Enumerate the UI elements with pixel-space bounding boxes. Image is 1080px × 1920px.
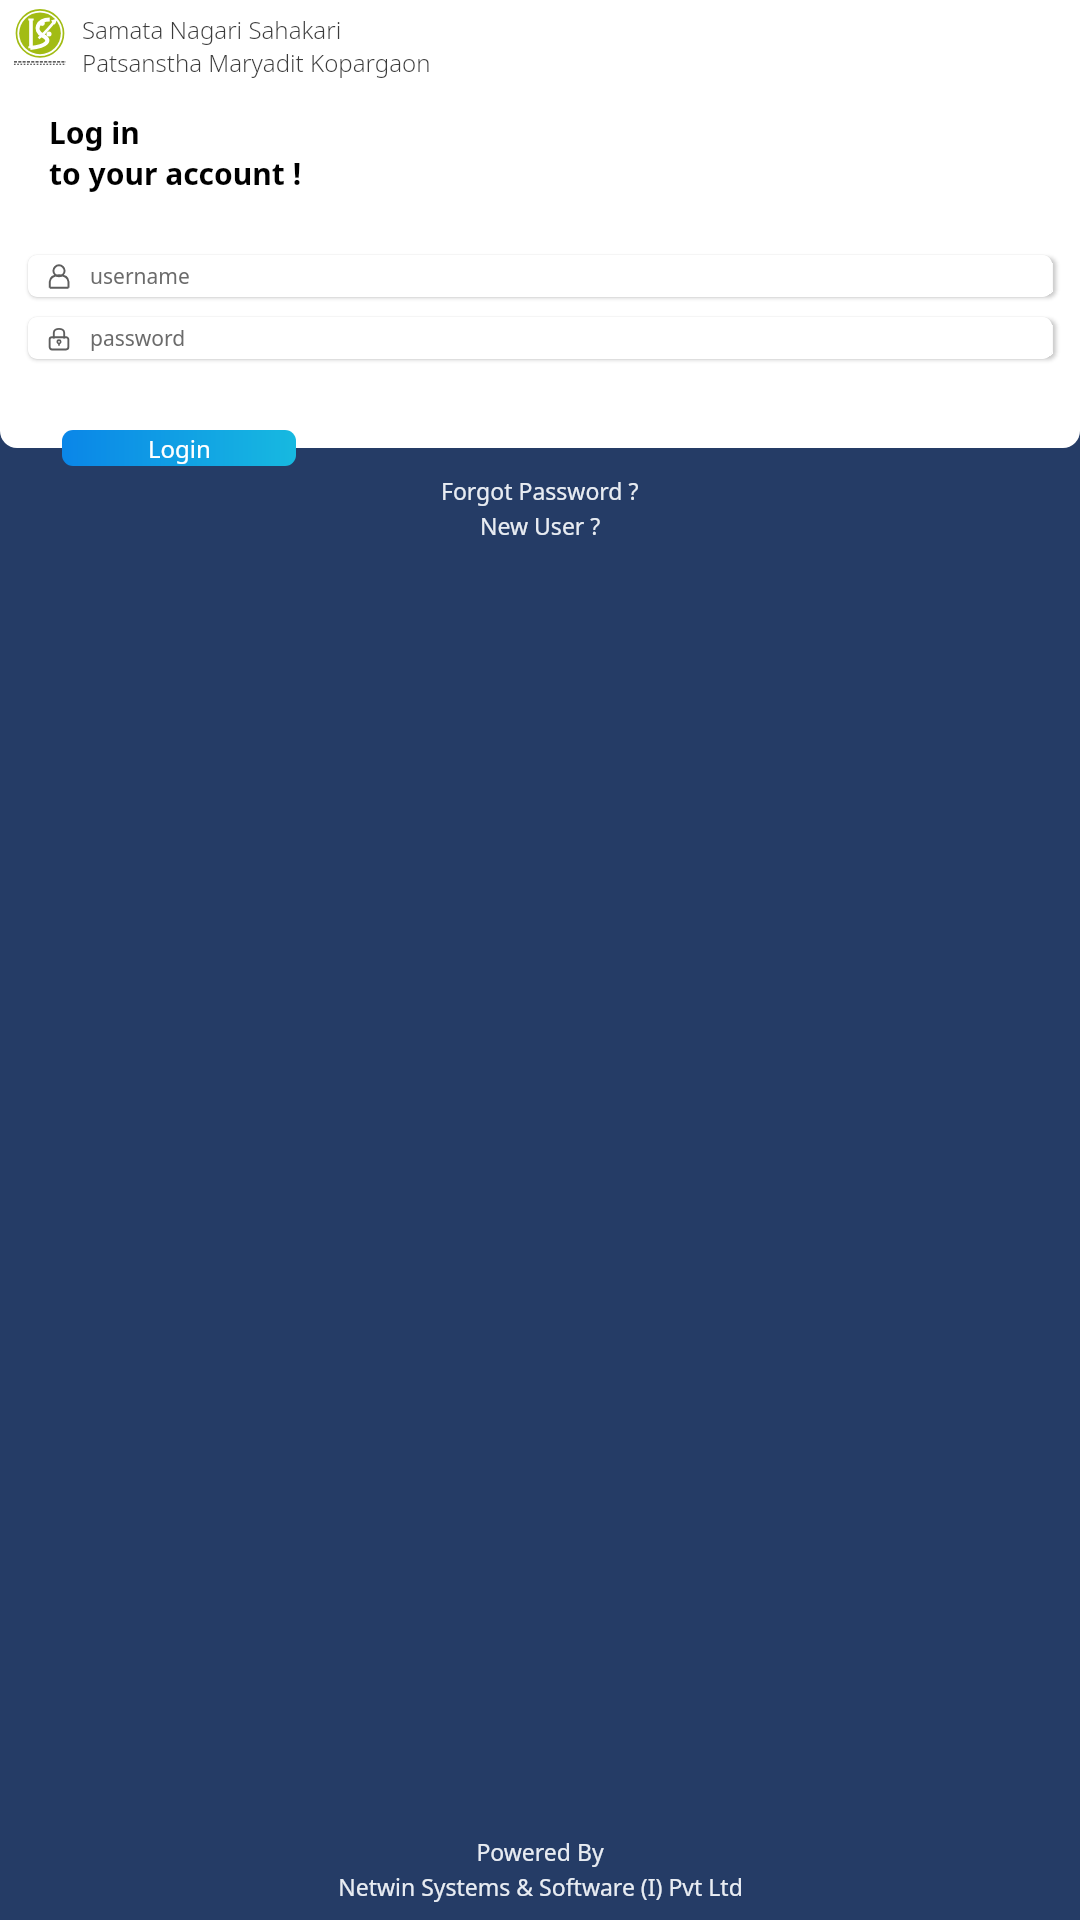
button[interactable]: Forgot Password ? — [433, 473, 647, 508]
button[interactable]: password — [28, 317, 1052, 359]
staticText: Forgot Password ? — [441, 475, 639, 506]
staticText: Patsanstha Maryadit Kopargaon — [82, 46, 431, 79]
staticText: to your account ! — [49, 153, 302, 194]
staticText: username — [90, 262, 190, 291]
staticText: Netwin Systems & Software (I) Pvt Ltd — [338, 1871, 743, 1902]
staticText: Login — [148, 432, 211, 465]
button[interactable]: username — [28, 255, 1052, 297]
staticText: Powered By — [476, 1836, 604, 1867]
staticText: New User ? — [480, 510, 601, 541]
staticText: password — [90, 324, 186, 353]
button[interactable]: New User ? — [472, 508, 609, 543]
staticText: Log in — [49, 112, 140, 153]
staticText: Samata Nagari Sahakari — [82, 13, 342, 46]
button[interactable]: Login — [62, 430, 296, 466]
